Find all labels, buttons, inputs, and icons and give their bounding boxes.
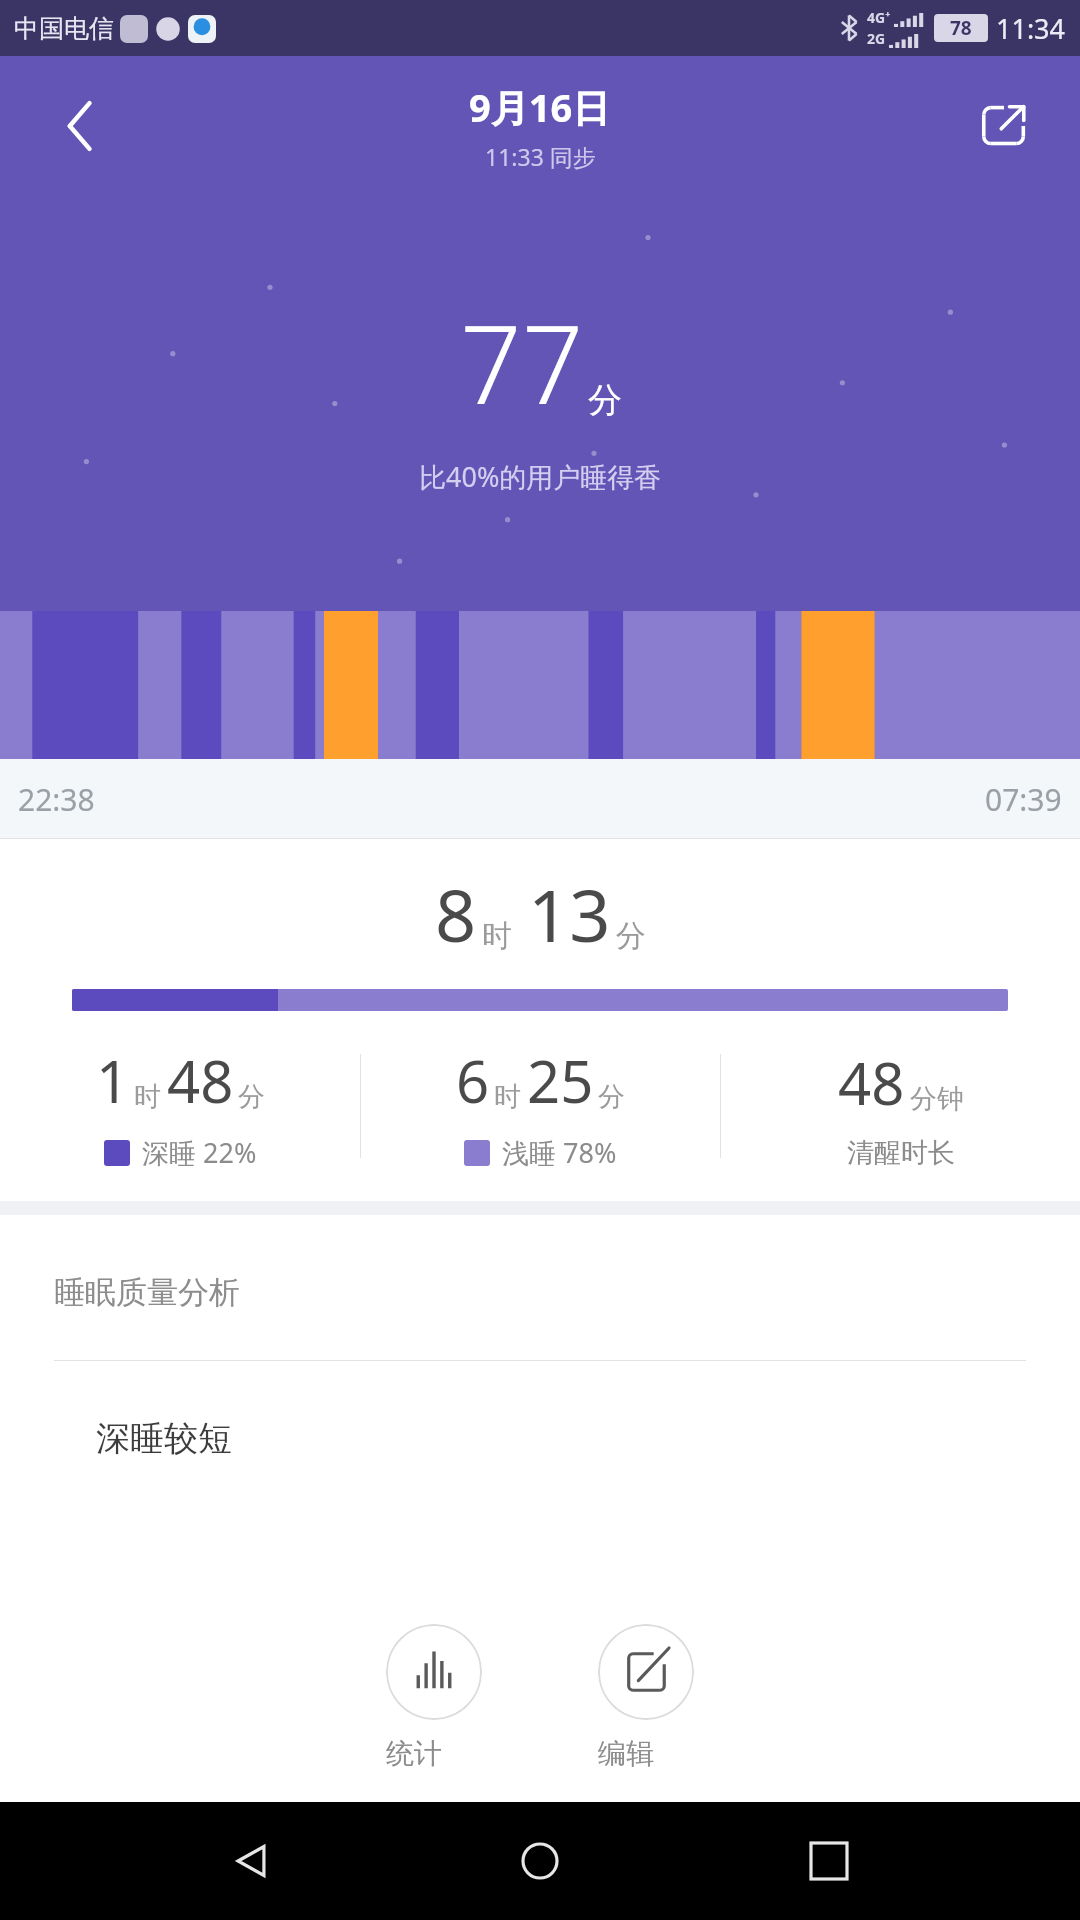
staticText: 分: [238, 1080, 265, 1114]
staticText: 时: [494, 1080, 521, 1114]
staticText: 清醒时长: [847, 1136, 955, 1170]
staticText: 6: [456, 1041, 490, 1120]
button[interactable]: Share: [964, 86, 1044, 166]
staticText: 22:38: [18, 779, 95, 820]
staticText: 13: [528, 865, 611, 963]
staticText: 2G: [867, 29, 886, 48]
button[interactable]: Back: [213, 1823, 289, 1899]
button[interactable]: Recents: [791, 1823, 867, 1899]
staticText: 编辑: [598, 1736, 694, 1771]
staticText: 分钟: [910, 1082, 964, 1116]
staticText: 11:33 同步: [485, 141, 596, 172]
staticText: 1: [96, 1041, 130, 1120]
staticText: 浅睡 78%: [502, 1134, 617, 1171]
staticText: 9月16日: [469, 81, 611, 133]
staticText: 比40%的用户睡得香: [419, 458, 662, 495]
staticText: 4G⁺: [867, 8, 891, 27]
staticText: 8: [435, 865, 477, 963]
staticText: 78: [950, 15, 972, 41]
button[interactable]: Home: [502, 1823, 578, 1899]
staticText: 深睡 22%: [142, 1134, 257, 1171]
staticText: 77: [460, 289, 584, 436]
staticText: 中国电信: [14, 13, 114, 44]
button[interactable]: Back: [40, 86, 120, 166]
staticText: 分: [616, 917, 646, 955]
staticText: 统计: [386, 1736, 482, 1771]
button[interactable]: Edit: [588, 1618, 704, 1777]
button[interactable]: Statistics: [376, 1618, 492, 1777]
staticText: 48: [838, 1043, 905, 1122]
staticText: 11:34: [996, 10, 1066, 47]
staticText: 时: [134, 1080, 161, 1114]
staticText: 48: [167, 1041, 234, 1120]
staticText: 分: [588, 379, 622, 422]
staticText: 时: [482, 917, 512, 955]
staticText: 分: [598, 1080, 625, 1114]
staticText: 07:39: [985, 779, 1062, 820]
staticText: 25: [527, 1041, 594, 1120]
staticText: 深睡较短: [96, 1417, 232, 1460]
staticText: 睡眠质量分析: [54, 1273, 240, 1312]
